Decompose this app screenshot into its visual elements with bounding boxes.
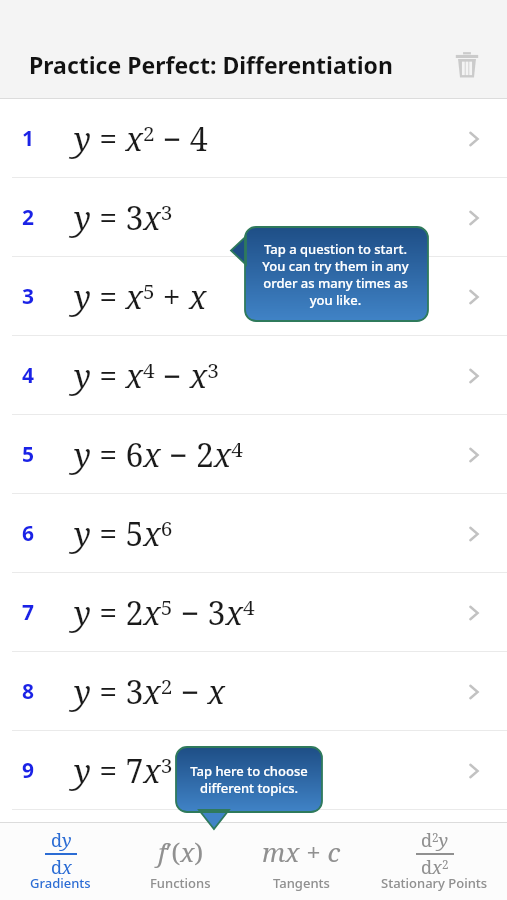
staticText: y = 3x3 [74, 196, 173, 240]
other: Delete all [453, 51, 481, 79]
staticText: y = x2 − 4 [74, 117, 208, 161]
button[interactable]: mx + c [262, 822, 341, 900]
staticText: 5 [22, 440, 35, 469]
button[interactable]: 1 [0, 99, 507, 178]
button[interactable]: f′(x) [150, 822, 211, 900]
staticText: y = 6x − 2x4 [74, 433, 243, 477]
staticText: 9 [22, 756, 35, 785]
staticText: Stationary Points [381, 874, 488, 892]
staticText: Practice Perfect: Differentiation [29, 49, 393, 80]
button[interactable]: 4 [0, 336, 507, 415]
button[interactable]: d2y [381, 822, 488, 900]
staticText: y = 5x6 [74, 512, 173, 556]
staticText: dy [51, 828, 72, 853]
button[interactable]: 9 [0, 731, 507, 810]
staticText: Tap a question to start. You can try the… [251, 240, 420, 309]
staticText: 7 [22, 598, 35, 627]
staticText: y = x5 + x [74, 275, 207, 319]
button[interactable]: 7 [0, 573, 507, 652]
button[interactable]: 5 [0, 415, 507, 494]
button[interactable]: 8 [0, 652, 507, 731]
staticText: Gradients [30, 874, 91, 892]
staticText: f′(x) [158, 834, 204, 869]
staticText: 3 [22, 282, 35, 311]
staticText: 1 [22, 124, 35, 153]
staticText: 6 [22, 519, 35, 548]
button[interactable]: 2 [0, 178, 507, 257]
staticText: 2 [22, 203, 35, 232]
button[interactable]: 3 [0, 257, 507, 336]
staticText: y = 7x3 [74, 749, 173, 793]
staticText: Functions [150, 874, 211, 892]
staticText: dx2 [421, 855, 449, 874]
staticText: y = 2x5 − 3x4 [74, 591, 255, 635]
staticText: Tap here to choose different topics. [186, 762, 312, 797]
staticText: y = x4 − x3 [74, 354, 219, 398]
button[interactable]: dy [30, 822, 91, 900]
staticText: 4 [22, 361, 35, 390]
button[interactable]: 6 [0, 494, 507, 573]
staticText: 8 [22, 677, 35, 706]
staticText: dx [51, 855, 72, 874]
staticText: y = 3x2 − x [74, 670, 226, 714]
staticText: mx + c [262, 834, 341, 869]
button[interactable]: Delete all [445, 43, 489, 87]
staticText: d2y [421, 828, 449, 853]
staticText: Tangents [273, 874, 330, 892]
